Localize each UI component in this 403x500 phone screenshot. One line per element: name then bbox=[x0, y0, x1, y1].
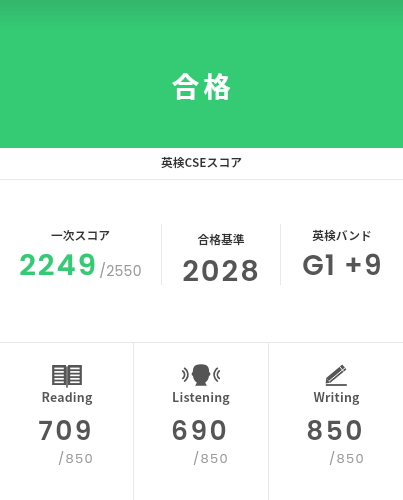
staticText: 2028 bbox=[182, 251, 261, 292]
button[interactable]: Writing bbox=[269, 343, 403, 500]
staticText: 合格 bbox=[172, 66, 235, 105]
staticText: Writing bbox=[313, 388, 360, 406]
staticText: /2550 bbox=[99, 261, 142, 281]
staticText: Reading bbox=[41, 388, 93, 406]
other: Reading bbox=[47, 363, 87, 387]
staticText: G1 +9 bbox=[302, 246, 383, 285]
staticText: 2249 bbox=[19, 245, 98, 286]
staticText: 709 bbox=[38, 412, 94, 449]
other: Listening bbox=[181, 363, 221, 387]
staticText: 英検バンド bbox=[312, 226, 372, 243]
button[interactable]: 英検バンド bbox=[280, 180, 403, 342]
staticText: 850 bbox=[306, 412, 365, 449]
staticText: /850 bbox=[329, 449, 365, 467]
staticText: 一次スコア bbox=[51, 226, 110, 243]
staticText: /850 bbox=[193, 449, 229, 467]
staticText: Listening bbox=[172, 388, 230, 406]
staticText: 英検CSEスコア bbox=[161, 153, 242, 170]
button[interactable]: Reading bbox=[0, 343, 133, 500]
staticText: 690 bbox=[171, 412, 229, 449]
button[interactable]: 一次スコア bbox=[0, 180, 161, 342]
staticText: /850 bbox=[58, 449, 94, 467]
button[interactable]: 合格基準 bbox=[161, 180, 280, 342]
button[interactable]: Listening bbox=[134, 343, 268, 500]
other: Writing bbox=[316, 363, 356, 387]
staticText: 合格基準 bbox=[197, 230, 245, 247]
